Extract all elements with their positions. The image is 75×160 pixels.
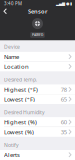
staticText: Location (4, 62, 29, 70)
staticText: Notify (4, 142, 19, 148)
staticText: Highest (°F) (4, 85, 38, 93)
staticText: 3:40 PM (4, 0, 22, 6)
staticText: Alerts (4, 151, 20, 159)
button[interactable]: Lowest (%) (0, 127, 75, 137)
staticText: Sensor (28, 7, 47, 15)
button[interactable]: Lowest (°F) (0, 94, 75, 104)
staticText: 65 (61, 95, 67, 103)
staticText: 78 (61, 85, 67, 93)
staticText: Lowest (%) (4, 128, 34, 136)
button[interactable]: Highest (%) (0, 117, 75, 127)
staticText: Name (4, 53, 19, 61)
button[interactable]: Name (0, 52, 75, 61)
staticText: Device (4, 43, 20, 50)
button[interactable]: Back (0, 6, 11, 16)
staticText: 35 (61, 128, 67, 136)
staticText: PAIRED (32, 33, 43, 37)
staticText: ▂▄▆ ● ▮ (56, 1, 72, 6)
button[interactable]: Alerts (0, 150, 75, 159)
staticText: Highest (%) (4, 118, 37, 126)
button[interactable]: Highest (°F) (0, 85, 75, 94)
staticText: Desired Temp. (4, 76, 37, 83)
staticText: Lowest (°F) (4, 95, 35, 103)
staticText: Desired Humidity (4, 109, 45, 116)
staticText: 60 (61, 118, 67, 126)
button[interactable]: Location (0, 62, 75, 71)
